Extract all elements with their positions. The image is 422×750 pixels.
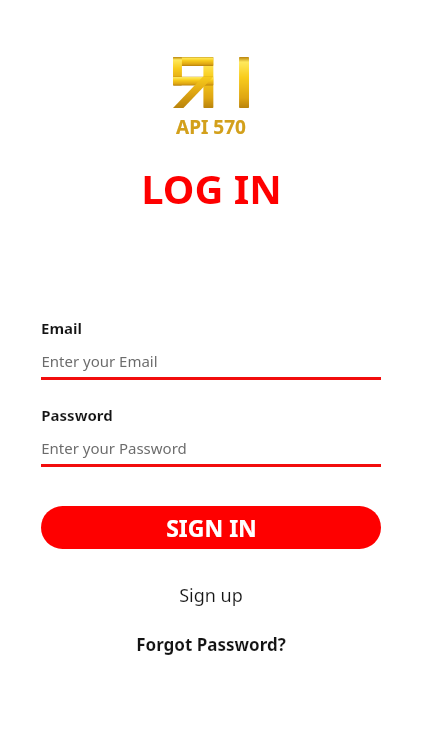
button[interactable]: Enter your Email xyxy=(41,351,381,380)
button[interactable]: SIGN IN xyxy=(41,506,381,549)
staticText: Sign up xyxy=(179,583,243,608)
staticText: API 570 xyxy=(176,114,246,140)
staticText: Password xyxy=(41,405,113,425)
button[interactable]: Forgot Password? xyxy=(116,629,306,660)
staticText: Enter your Password xyxy=(41,438,187,458)
staticText: LOG IN xyxy=(141,161,282,215)
staticText: Enter your Email xyxy=(41,351,158,371)
staticText: SIGN IN xyxy=(166,512,257,543)
button[interactable]: Enter your Password xyxy=(41,438,381,467)
staticText: Email xyxy=(41,318,82,338)
staticText: Forgot Password? xyxy=(136,633,286,656)
button[interactable]: Sign up xyxy=(159,579,263,612)
